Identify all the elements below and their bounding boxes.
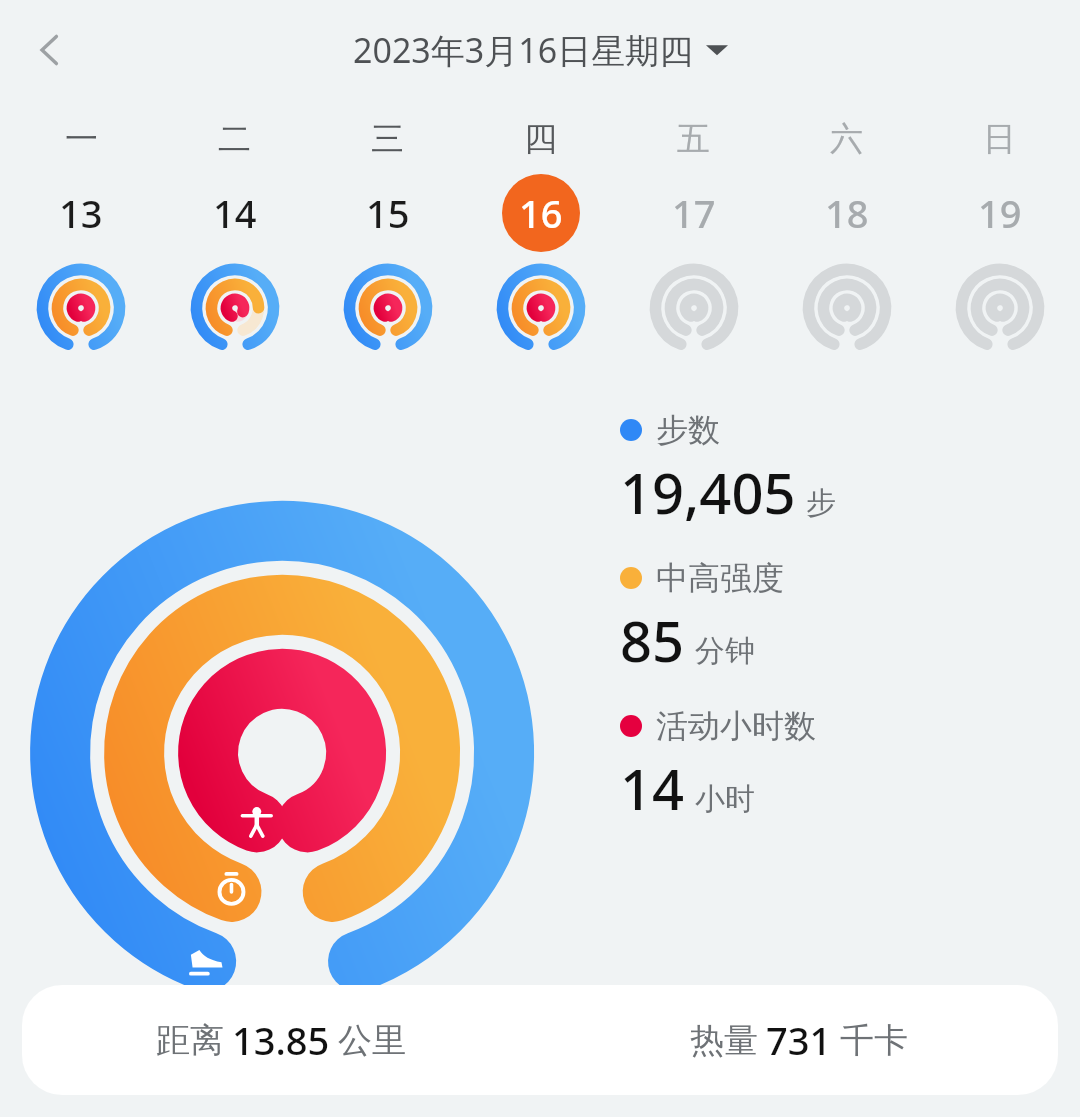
button[interactable]: 2023年3月16日星期四 bbox=[353, 27, 728, 73]
button[interactable]: 六 bbox=[770, 118, 923, 358]
staticText: 热量 bbox=[690, 1019, 758, 1062]
staticText: 19,405 bbox=[620, 454, 796, 530]
staticText: 13.85 bbox=[232, 1014, 330, 1066]
button[interactable]: 中高强度 bbox=[620, 558, 784, 678]
staticText: 18 bbox=[825, 187, 869, 239]
staticText: 17 bbox=[672, 187, 716, 239]
staticText: 五 bbox=[677, 118, 710, 160]
staticText: 距离 bbox=[156, 1019, 224, 1062]
button[interactable]: 五 bbox=[617, 118, 770, 358]
staticText: 四 bbox=[524, 118, 557, 160]
staticText: 15 bbox=[366, 187, 410, 239]
staticText: 14 bbox=[213, 187, 257, 239]
staticText: 分钟 bbox=[695, 632, 755, 670]
staticText: 步数 bbox=[656, 410, 720, 450]
staticText: 二 bbox=[218, 118, 251, 160]
button[interactable]: 二 bbox=[158, 118, 311, 358]
staticText: 公里 bbox=[338, 1019, 406, 1062]
button[interactable]: 步数 bbox=[620, 410, 836, 530]
button[interactable]: 三 bbox=[311, 118, 464, 358]
staticText: 中高强度 bbox=[656, 558, 784, 598]
staticText: 活动小时数 bbox=[656, 706, 816, 746]
button[interactable]: 日 bbox=[923, 118, 1076, 358]
staticText: 三 bbox=[371, 118, 404, 160]
button[interactable]: 活动小时数 bbox=[620, 706, 816, 826]
button[interactable]: 四 bbox=[464, 118, 617, 358]
staticText: 千卡 bbox=[840, 1019, 908, 1062]
staticText: 2023年3月16日星期四 bbox=[353, 27, 694, 73]
staticText: 13 bbox=[59, 187, 103, 239]
button[interactable]: 距离 bbox=[22, 985, 1058, 1095]
staticText: 85 bbox=[620, 602, 685, 678]
staticText: 日 bbox=[983, 118, 1016, 160]
staticText: 14 bbox=[620, 750, 685, 826]
staticText: 六 bbox=[830, 118, 863, 160]
staticText: 小时 bbox=[695, 780, 755, 818]
staticText: 步 bbox=[806, 484, 836, 522]
staticText: 16 bbox=[519, 187, 563, 239]
staticText: 一 bbox=[65, 118, 98, 160]
button[interactable]: 一 bbox=[4, 118, 158, 358]
staticText: 731 bbox=[766, 1014, 832, 1066]
button[interactable]: Back bbox=[14, 14, 86, 86]
staticText: 19 bbox=[978, 187, 1022, 239]
